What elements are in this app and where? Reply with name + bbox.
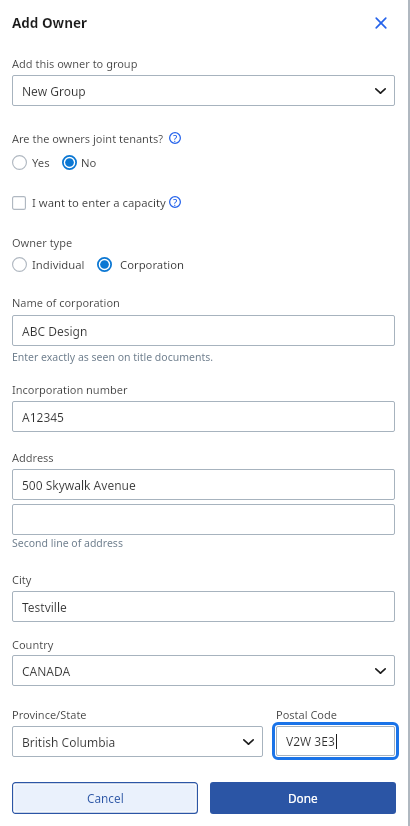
staticText: I want to enter a capacity <box>32 195 166 210</box>
staticText: Country <box>12 637 54 652</box>
staticText: Name of corporation <box>12 295 120 310</box>
staticText: No <box>81 155 97 170</box>
staticText: CANADA <box>22 663 71 679</box>
staticText: ? <box>173 132 178 144</box>
button[interactable]: Yes <box>12 155 50 170</box>
button[interactable]: Testville <box>12 591 395 622</box>
staticText: Postal Code <box>276 707 337 722</box>
staticText: New Group <box>22 83 86 99</box>
button[interactable]: Corporation <box>97 257 185 272</box>
staticText: Province/State <box>12 707 87 722</box>
button[interactable]: Done <box>210 782 396 814</box>
staticText: Individual <box>32 257 85 272</box>
button[interactable]: ABC Design <box>12 315 395 346</box>
button[interactable]: A12345 <box>12 401 395 432</box>
staticText: Second line of address <box>12 536 123 550</box>
staticText: City <box>12 572 32 587</box>
button[interactable]: Individual <box>12 257 85 272</box>
button[interactable]: Help <box>169 196 181 208</box>
button[interactable]: Close <box>369 11 393 35</box>
staticText: Address <box>12 450 54 465</box>
button[interactable]: 500 Skywalk Avenue <box>12 469 395 500</box>
button: Add Owner <box>12 14 88 32</box>
staticText: Incorporation number <box>12 382 128 397</box>
staticText: 500 Skywalk Avenue <box>22 477 136 493</box>
staticText: ABC Design <box>22 323 88 339</box>
staticText: Yes <box>32 155 50 170</box>
staticText: Are the owners joint tenants? <box>12 131 163 146</box>
staticText: Enter exactly as seen on title documents… <box>12 350 214 364</box>
staticText: Cancel <box>87 790 124 806</box>
button[interactable]: New Group <box>12 75 395 106</box>
button[interactable]: Cancel <box>12 782 198 814</box>
staticText: Owner type <box>12 235 73 250</box>
staticText: British Columbia <box>22 734 116 750</box>
staticText: A12345 <box>22 409 64 425</box>
button[interactable]: No <box>62 155 97 170</box>
button[interactable]: Help <box>169 132 181 144</box>
staticText: Add this owner to group <box>12 56 138 71</box>
button[interactable]: V2W 3E3 <box>276 726 395 756</box>
staticText: Testville <box>22 599 67 615</box>
staticText: V2W 3E3 <box>286 733 335 749</box>
button[interactable]: British Columbia <box>12 726 263 757</box>
staticText: Add Owner <box>12 14 88 32</box>
button[interactable]: CANADA <box>12 655 395 686</box>
staticText: Corporation <box>120 257 185 272</box>
staticText: Done <box>288 790 318 806</box>
button[interactable] <box>12 504 395 535</box>
button[interactable]: I want to enter a capacity <box>12 195 166 210</box>
staticText: ? <box>173 196 178 208</box>
